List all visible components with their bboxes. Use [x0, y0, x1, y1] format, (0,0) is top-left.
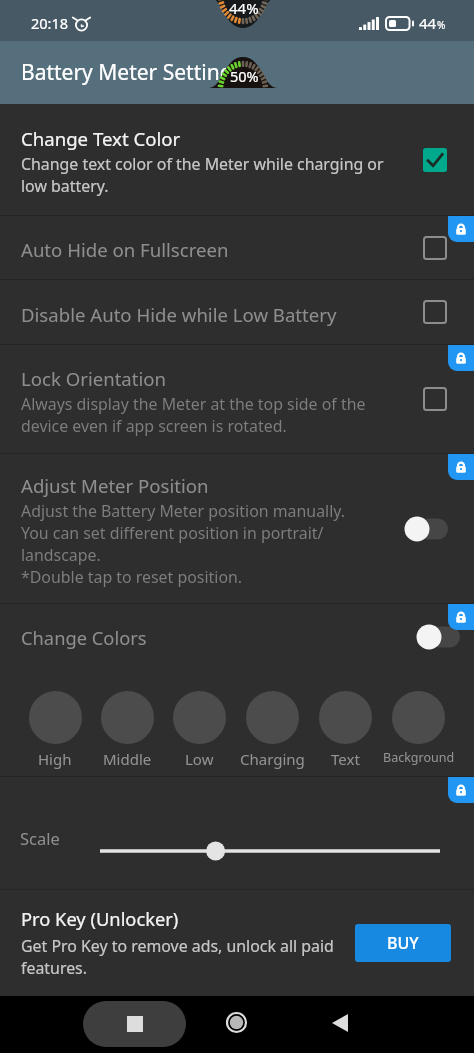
staticText: Battery Meter Settings	[21, 58, 243, 87]
staticText: 20:18	[31, 13, 69, 33]
staticText: 44	[419, 13, 437, 33]
staticText: Scale	[20, 827, 60, 849]
button[interactable]: Premium locked feature	[448, 604, 474, 630]
staticText: Change Text Color	[21, 126, 181, 151]
staticText: Background	[383, 749, 455, 766]
button[interactable]: Disable Auto Hide while Low Battery	[0, 280, 474, 344]
button[interactable]: High	[19, 691, 91, 769]
staticText: Auto Hide on Fullscreen	[21, 237, 229, 262]
staticText: Change text color of the Meter while cha…	[21, 153, 384, 197]
staticText: Adjust the Battery Meter position manual…	[21, 500, 345, 588]
staticText: 50%	[230, 66, 259, 86]
button[interactable]: Change Colors	[0, 604, 474, 670]
button[interactable]: Toggle switch, off	[416, 622, 462, 652]
button[interactable]: Toggle option checkbox	[420, 384, 450, 414]
button[interactable]: Toggle switch, off	[404, 514, 450, 544]
staticText: High	[38, 749, 72, 769]
staticText: Middle	[103, 749, 152, 769]
button[interactable]: Charging	[236, 691, 309, 769]
staticText: Low	[185, 749, 214, 769]
button[interactable]: BUY	[355, 924, 451, 962]
button[interactable]: Lock Orientation	[0, 345, 474, 453]
button[interactable]: Scale slider	[0, 777, 474, 889]
staticText: Adjust Meter Position	[21, 473, 209, 498]
button[interactable]: Recents	[83, 1001, 186, 1047]
staticText: BUY	[387, 932, 419, 954]
button[interactable]: Premium locked feature	[448, 345, 474, 371]
button[interactable]: Toggle option checkbox	[420, 297, 450, 327]
button[interactable]: Premium locked feature	[448, 216, 474, 242]
staticText: Pro Key (Unlocker)	[21, 906, 179, 931]
staticText: Lock Orientation	[21, 366, 167, 391]
button[interactable]: Background	[382, 691, 455, 766]
button[interactable]: Premium locked feature	[448, 777, 474, 803]
button[interactable]: Back	[317, 1000, 362, 1045]
staticText: %	[437, 18, 446, 32]
button[interactable]: Text	[309, 691, 382, 769]
staticText: Get Pro Key to remove ads, unlock all pa…	[21, 935, 334, 979]
staticText: Charging	[240, 749, 305, 769]
button[interactable]: Home	[214, 1000, 259, 1045]
button[interactable]: Change Text Color	[0, 104, 474, 215]
button[interactable]: Premium locked feature	[448, 454, 474, 480]
staticText: Change Colors	[21, 625, 416, 650]
button[interactable]: Middle	[91, 691, 163, 769]
staticText: Disable Auto Hide while Low Battery	[21, 302, 337, 327]
button[interactable]: Low	[163, 691, 236, 769]
button[interactable]: Change text color checkbox	[420, 145, 450, 175]
button[interactable]: Toggle option checkbox	[420, 233, 450, 263]
staticText: 44%	[229, 0, 259, 18]
button[interactable]: Auto Hide on Fullscreen	[0, 216, 474, 279]
staticText: Text	[331, 749, 360, 769]
button[interactable]: Adjust Meter Position	[0, 454, 474, 603]
staticText: Always display the Meter at the top side…	[21, 393, 366, 437]
